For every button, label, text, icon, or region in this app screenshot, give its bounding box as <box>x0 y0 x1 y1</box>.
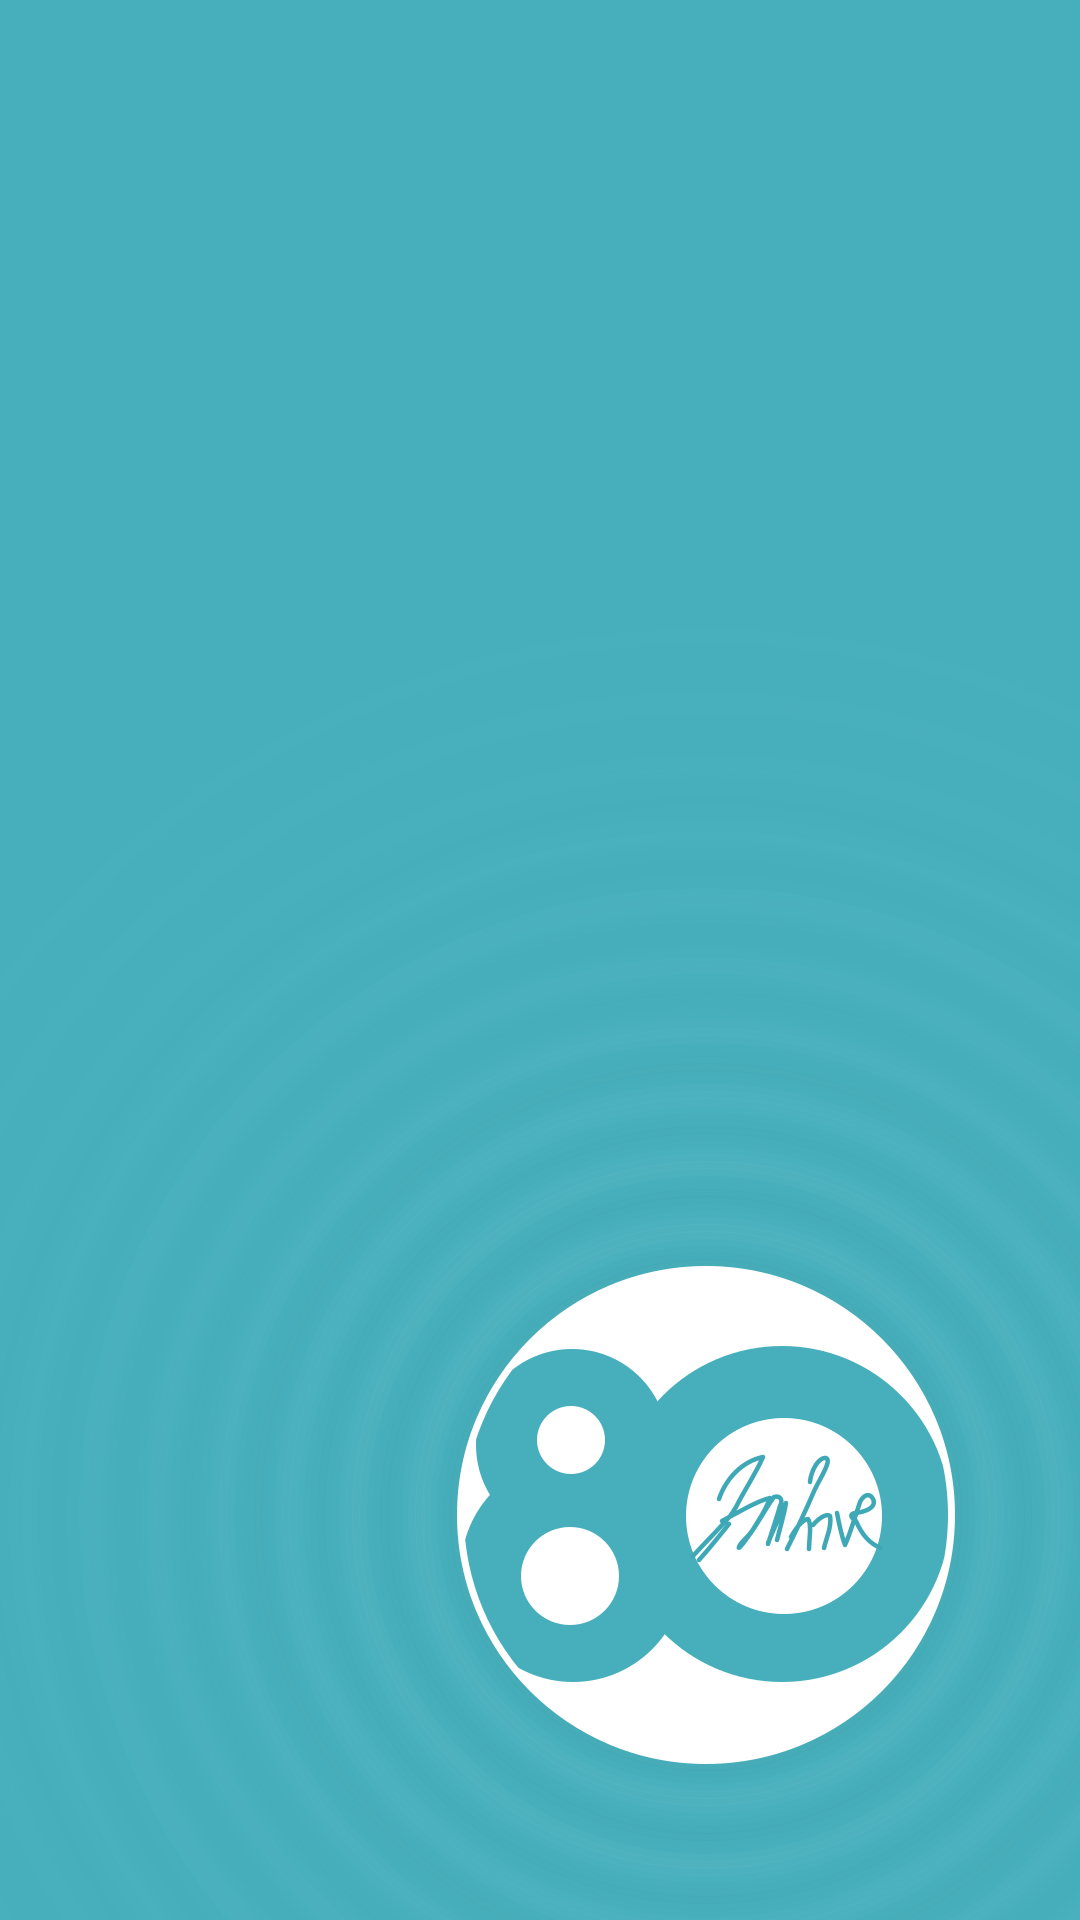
button[interactable]: 80 Forhe <box>0 0 1080 1920</box>
